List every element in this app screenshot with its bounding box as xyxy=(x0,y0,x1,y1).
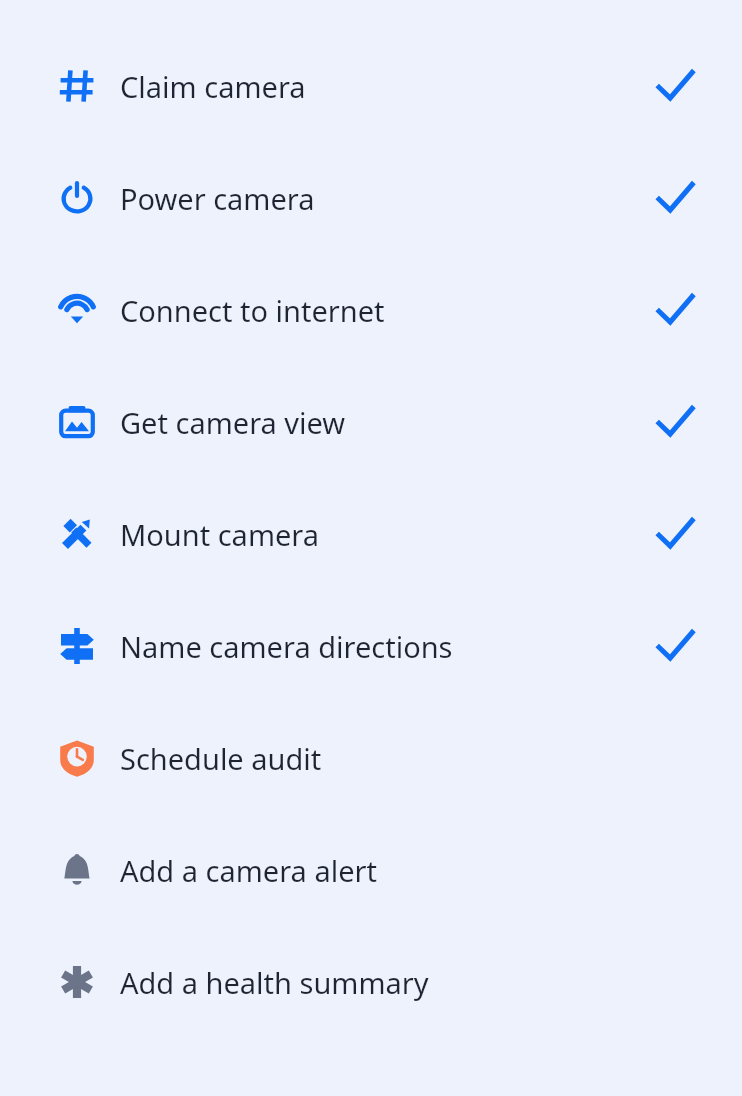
staticText: Connect to internet xyxy=(120,291,385,330)
button[interactable]: Power camera xyxy=(0,142,742,254)
staticText: Power camera xyxy=(120,179,315,218)
button[interactable]: Add a health summary xyxy=(0,926,742,1038)
staticText: Get camera view xyxy=(120,403,346,442)
button[interactable]: Get camera view xyxy=(0,366,742,478)
button[interactable]: Mount camera xyxy=(0,478,742,590)
button[interactable]: Connect to internet xyxy=(0,254,742,366)
button[interactable]: Add a camera alert xyxy=(0,814,742,926)
staticText: Claim camera xyxy=(120,67,306,106)
staticText: Name camera directions xyxy=(120,627,453,666)
staticText: Add a health summary xyxy=(120,963,429,1002)
button[interactable]: Schedule audit xyxy=(0,702,742,814)
staticText: Mount camera xyxy=(120,515,320,554)
staticText: Add a camera alert xyxy=(120,851,377,890)
staticText: Schedule audit xyxy=(120,739,322,778)
button[interactable]: Claim camera xyxy=(0,30,742,142)
button[interactable]: Name camera directions xyxy=(0,590,742,702)
